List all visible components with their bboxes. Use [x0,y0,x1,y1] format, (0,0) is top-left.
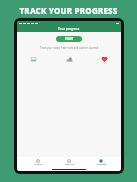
button[interactable] [90,157,112,167]
staticText: Track your steps, heart rate and calorie… [31,46,107,50]
staticText: Your progress [58,27,80,31]
button[interactable] [58,157,80,167]
button[interactable]: Metric [29,55,38,64]
button[interactable] [27,157,49,167]
button[interactable]: Metric [65,55,74,64]
staticText: START [65,37,74,41]
staticText: TRACK YOUR PROGRESS [19,5,118,16]
button[interactable]: Metric [100,55,109,64]
button[interactable]: START [56,36,82,42]
